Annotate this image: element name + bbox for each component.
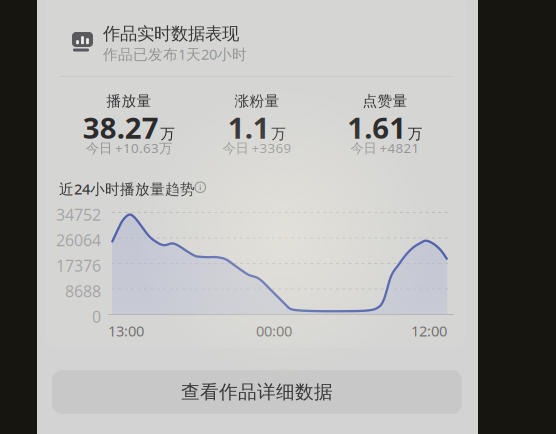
staticText: 播放量 bbox=[106, 92, 151, 110]
staticText: 查看作品详细数据 bbox=[181, 380, 333, 403]
staticText: 34752 bbox=[56, 204, 101, 225]
staticText: 0 bbox=[92, 306, 101, 327]
staticText: 点赞量 bbox=[362, 92, 407, 110]
staticText: 12:00 bbox=[411, 321, 447, 340]
staticText: 作品已发布1天20小时 bbox=[103, 44, 247, 64]
staticText: 今日 +10.63万 bbox=[86, 139, 172, 157]
staticText: 万 bbox=[160, 125, 175, 143]
staticText: 17376 bbox=[56, 255, 101, 276]
staticText: 1.1 bbox=[228, 108, 270, 147]
staticText: 1.61 bbox=[347, 108, 406, 147]
button[interactable]: 查看作品详细数据 bbox=[52, 370, 462, 414]
staticText: 万 bbox=[271, 125, 286, 143]
staticText: 近24小时播放量趋势 bbox=[59, 179, 195, 198]
staticText: 作品实时数据表现 bbox=[103, 23, 239, 44]
staticText: 26064 bbox=[56, 229, 101, 251]
staticText: 38.27 bbox=[83, 108, 159, 147]
staticText: 涨粉量 bbox=[234, 92, 279, 110]
staticText: 8688 bbox=[65, 280, 101, 302]
staticText: 00:00 bbox=[256, 321, 292, 340]
staticText: 今日 +3369 bbox=[222, 139, 291, 157]
staticText: 万 bbox=[408, 125, 423, 143]
staticText: 13:00 bbox=[108, 321, 144, 340]
staticText: 今日 +4821 bbox=[350, 139, 419, 157]
